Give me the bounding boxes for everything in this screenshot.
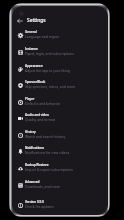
staticText: General: [25, 30, 37, 34]
staticText: Check for updates: [25, 204, 54, 209]
button[interactable]: Player: [12, 94, 108, 110]
staticText: Skip sponsors, intros, and more: [25, 84, 76, 89]
staticText: Advanced: [25, 180, 40, 184]
staticText: Notifications for new videos: [25, 150, 70, 155]
staticText: Audio and video: [25, 113, 49, 117]
button[interactable]: Advanced: [12, 177, 108, 193]
button[interactable]: Back: [14, 15, 25, 26]
staticText: Downloads, and more: [25, 184, 60, 189]
button[interactable]: Backup/Restore: [12, 160, 108, 176]
staticText: Backup/Restore: [25, 163, 49, 167]
button[interactable]: History: [12, 127, 108, 143]
staticText: Quality and format: [25, 117, 56, 122]
staticText: Player: [25, 97, 35, 101]
button[interactable]: Notifications: [12, 143, 108, 159]
button[interactable]: Audio and video: [12, 110, 108, 126]
button[interactable]: SponsorBlock: [12, 77, 108, 93]
staticText: History: [25, 130, 36, 134]
staticText: SponsorBlock: [25, 80, 46, 84]
staticText: Import & export subscriptions: [25, 167, 73, 172]
button[interactable]: Instance: [12, 44, 108, 60]
staticText: Adjust the app to your liking: [25, 68, 70, 73]
staticText: Settings: [27, 17, 46, 24]
staticText: Defaults and behavior: [25, 101, 61, 106]
staticText: Appearance: [25, 64, 43, 68]
staticText: Language and region: [25, 34, 60, 39]
staticText: Notifications: [25, 146, 44, 150]
button[interactable]: Appearance: [12, 61, 108, 77]
staticText: Piped, login, and subscriptions: [25, 51, 74, 56]
staticText: Version 0.9.0: [25, 200, 44, 204]
staticText: Watch and search history: [25, 134, 66, 139]
button[interactable]: General: [12, 27, 108, 43]
staticText: Instance: [25, 47, 38, 51]
button[interactable]: Version 0.9.0: [12, 197, 108, 213]
